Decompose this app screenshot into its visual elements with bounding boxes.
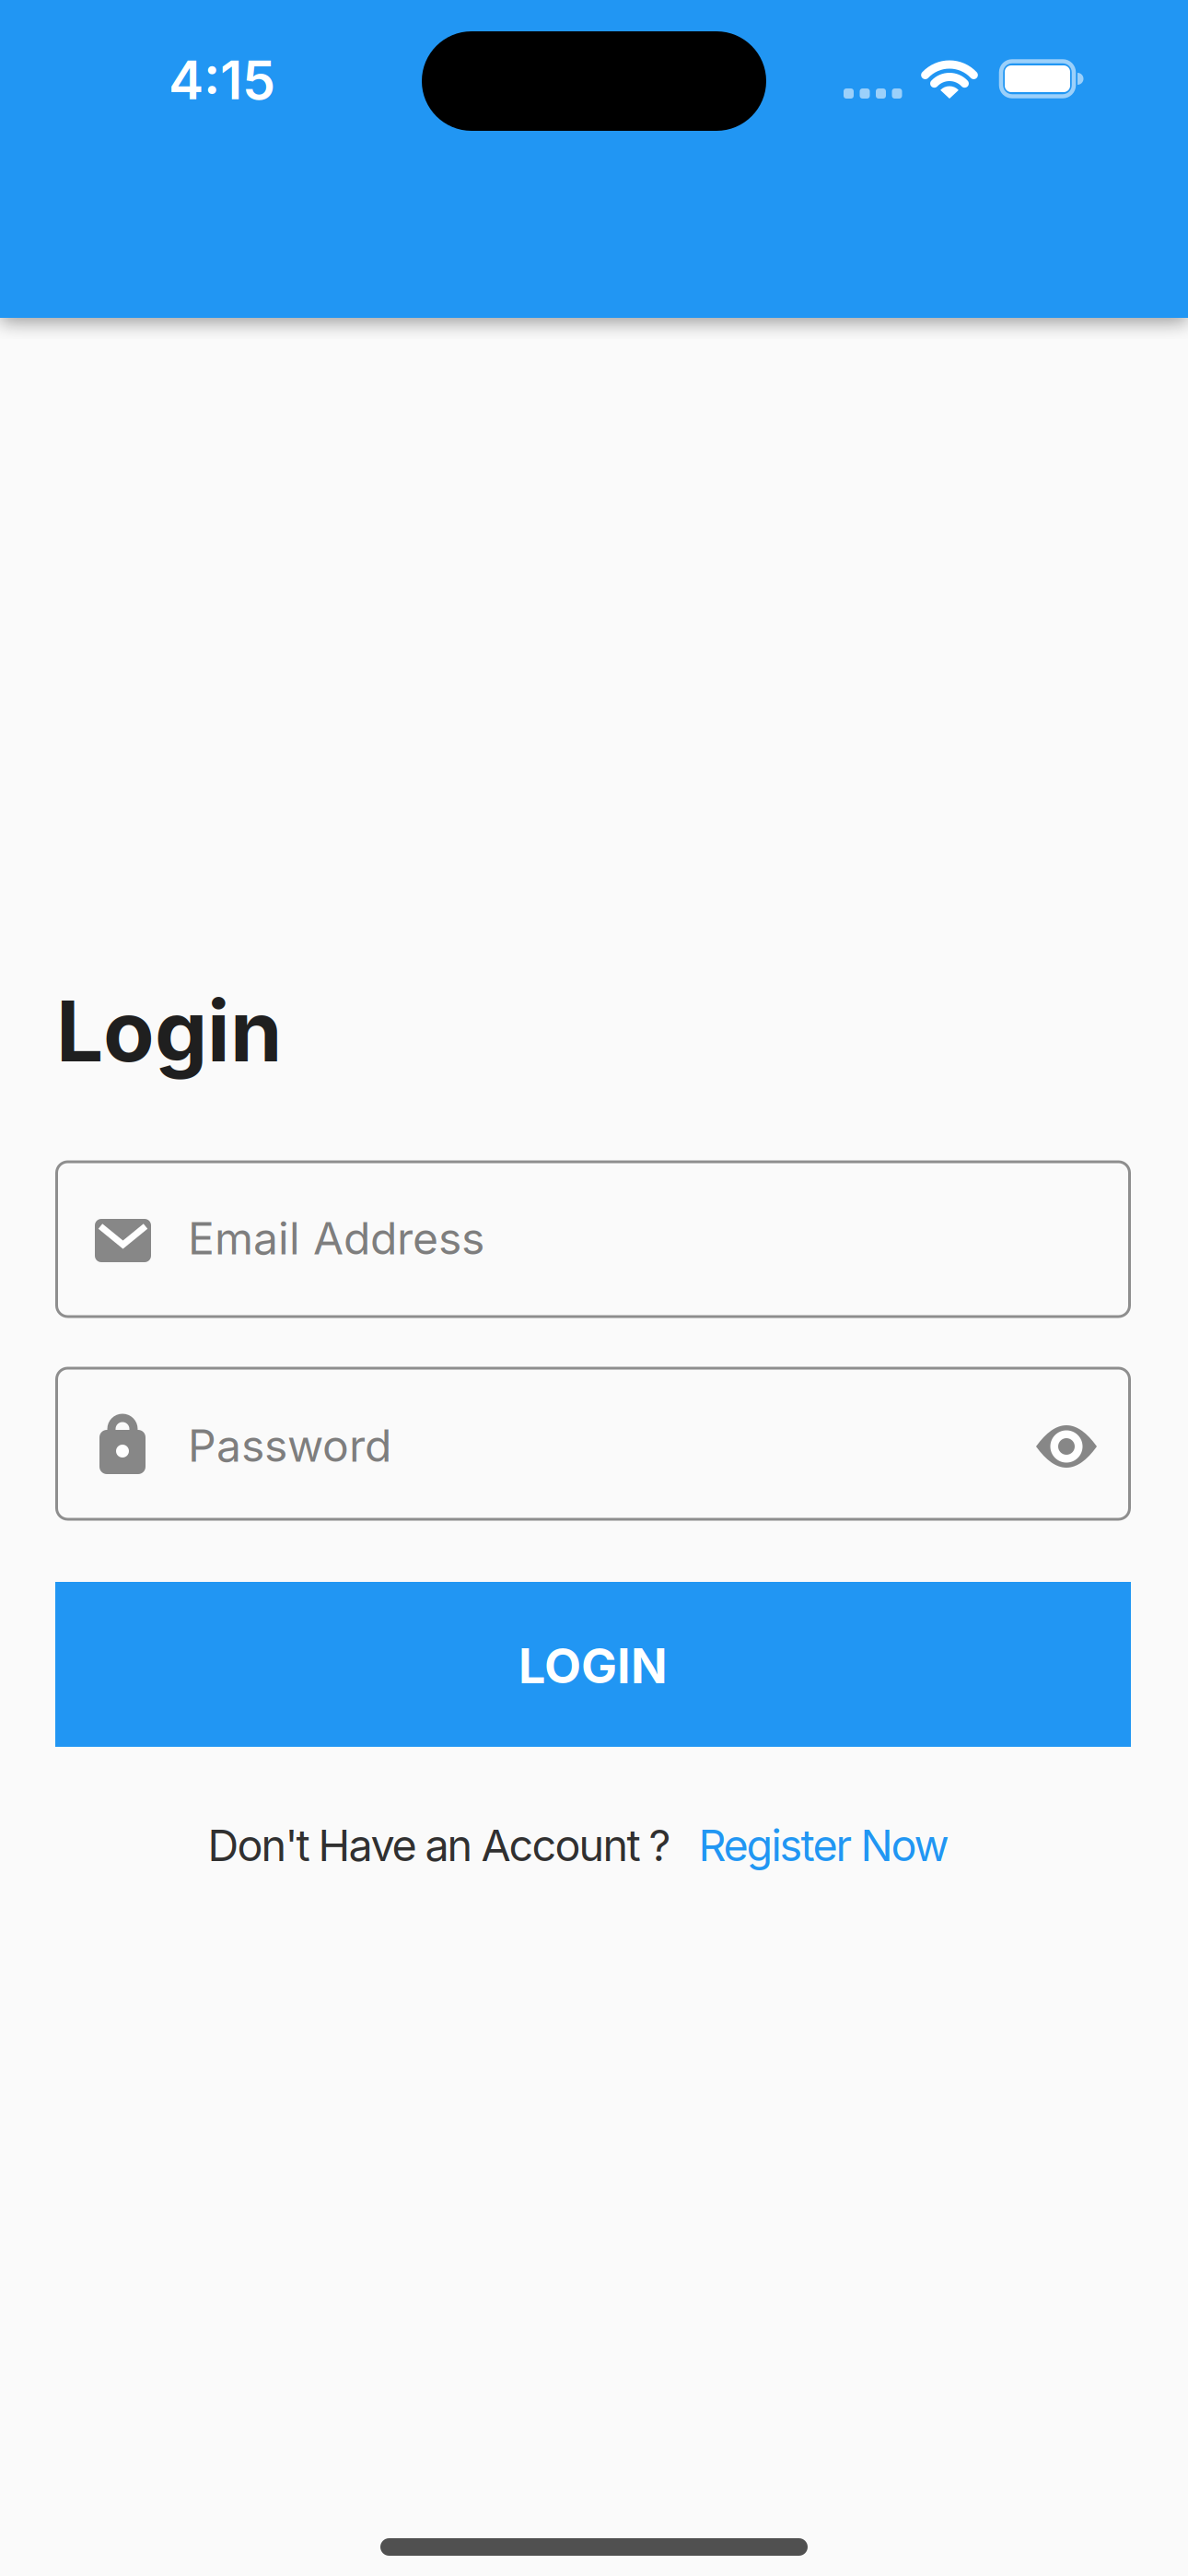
staticText: Email Address (188, 1212, 484, 1265)
staticText: LOGIN (518, 1637, 668, 1695)
staticText: Password (188, 1419, 391, 1472)
staticText: Login (56, 980, 282, 1081)
staticText: Register Now (699, 1819, 949, 1871)
staticText: Don't Have an Account ? (208, 1819, 671, 1871)
staticText: 4:15 (169, 48, 275, 112)
